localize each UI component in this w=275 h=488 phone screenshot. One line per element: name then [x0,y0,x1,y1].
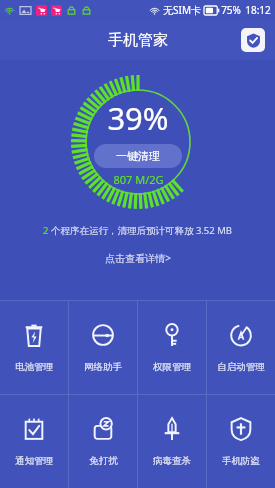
button[interactable]: 病毒查杀 [138,395,206,488]
staticText: 18:12 [245,3,271,17]
staticText: 网络助手 [84,361,122,373]
button[interactable]: 免打扰 [69,395,137,488]
staticText: 权限管理 [153,361,191,373]
staticText: 无SIM卡 [163,3,201,17]
staticText: 手机管家 [108,31,168,50]
button[interactable]: Security shield [241,28,265,52]
staticText: 75% [221,3,241,17]
staticText: 点击查看详情> [105,251,171,265]
staticText: 病毒查杀 [153,455,191,467]
button[interactable]: 网络助手 [69,301,137,394]
button[interactable]: 通知管理 [0,395,68,488]
button[interactable]: 手机防盗 [207,395,275,488]
button[interactable]: 点击查看详情> [97,249,179,267]
button[interactable]: 权限管理 [138,301,206,394]
staticText: 电池管理 [15,361,53,373]
staticText: 2 个程序在运行，清理后预计可释放 3.52 MB [43,224,232,237]
staticText: 一键清理 [116,149,160,163]
staticText: 39% [107,97,169,139]
staticText: 免打扰 [89,455,118,467]
button[interactable]: 电池管理 [0,301,68,394]
staticText: 通知管理 [15,455,53,467]
button[interactable]: 自启动管理 [207,301,275,394]
staticText: 807 M/2G [113,172,164,187]
staticText: 自启动管理 [217,361,265,373]
staticText: 手机防盗 [222,455,260,467]
button[interactable]: 一键清理 [94,144,182,168]
